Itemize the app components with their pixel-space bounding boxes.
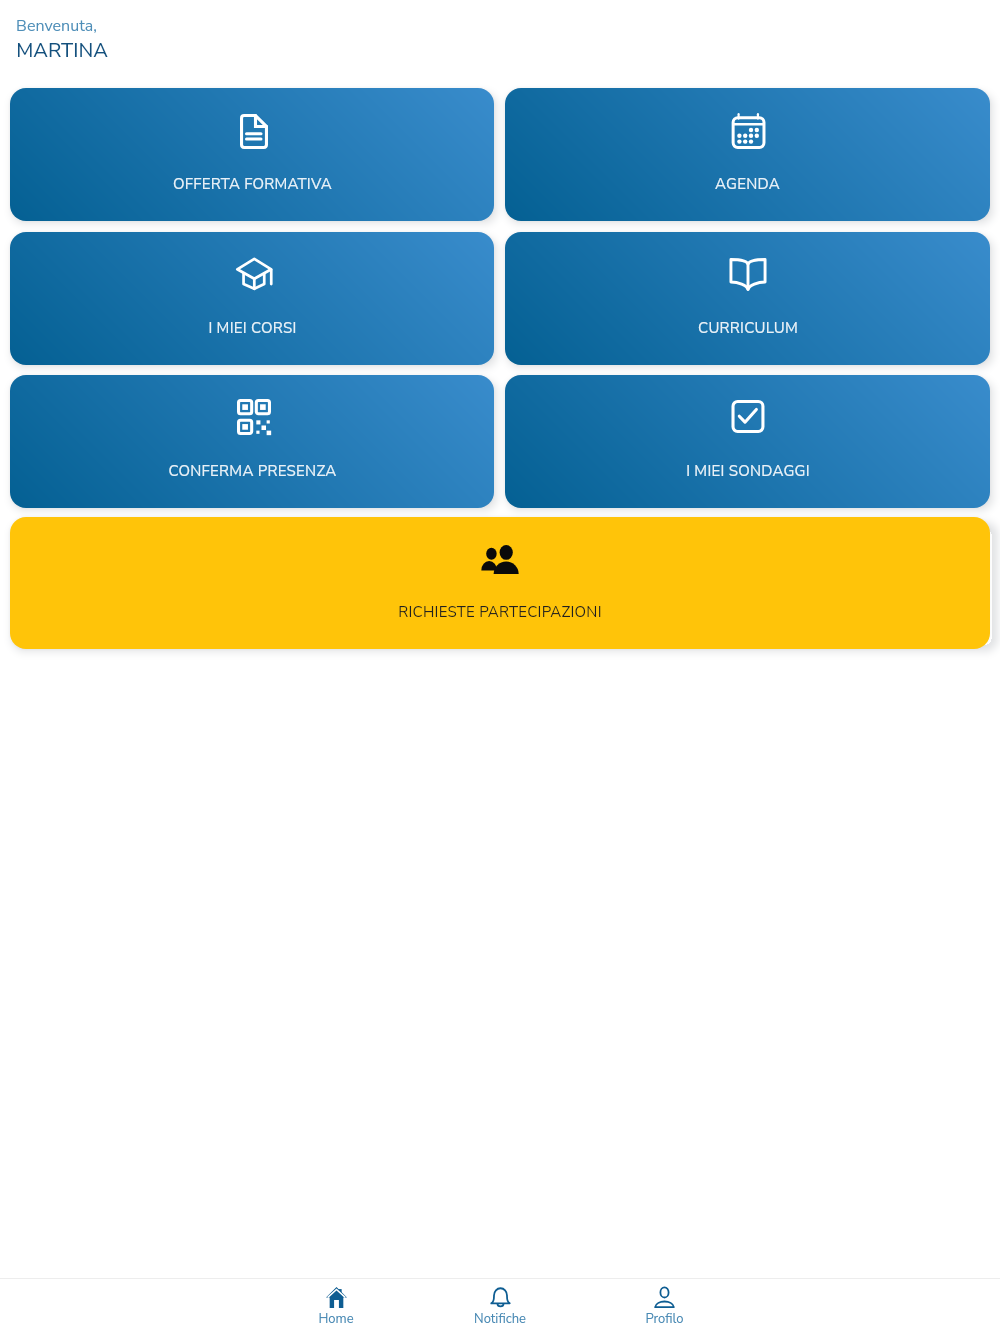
button[interactable]: RICHIESTE PARTECIPAZIONI [10, 517, 990, 649]
button[interactable]: Notifiche [418, 1279, 582, 1334]
button[interactable]: OFFERTA FORMATIVA [10, 88, 494, 221]
staticText: AGENDA [715, 174, 780, 194]
staticText: CURRICULUM [698, 318, 798, 338]
button[interactable]: Home [254, 1279, 418, 1334]
button[interactable]: AGENDA [505, 88, 990, 221]
other: Home [326, 1287, 347, 1308]
staticText: I MIEI SONDAGGI [686, 461, 810, 481]
staticText: I MIEI CORSI [208, 318, 297, 338]
staticText: Benvenuta, [16, 15, 97, 37]
button[interactable]: I MIEI SONDAGGI [505, 375, 990, 508]
staticText: MARTINA [16, 37, 108, 64]
staticText: OFFERTA FORMATIVA [173, 174, 332, 194]
staticText: Profilo [645, 1310, 684, 1328]
other: Notifiche [490, 1287, 511, 1308]
staticText: RICHIESTE PARTECIPAZIONI [398, 602, 602, 622]
other: Profilo [654, 1287, 675, 1308]
staticText: CONFERMA PRESENZA [168, 461, 337, 481]
button[interactable]: I MIEI CORSI [10, 232, 494, 365]
staticText: Notifiche [474, 1310, 526, 1328]
staticText: Home [318, 1310, 354, 1328]
button[interactable]: CONFERMA PRESENZA [10, 375, 494, 508]
button[interactable]: CURRICULUM [505, 232, 990, 365]
button[interactable]: Profilo [582, 1279, 746, 1334]
